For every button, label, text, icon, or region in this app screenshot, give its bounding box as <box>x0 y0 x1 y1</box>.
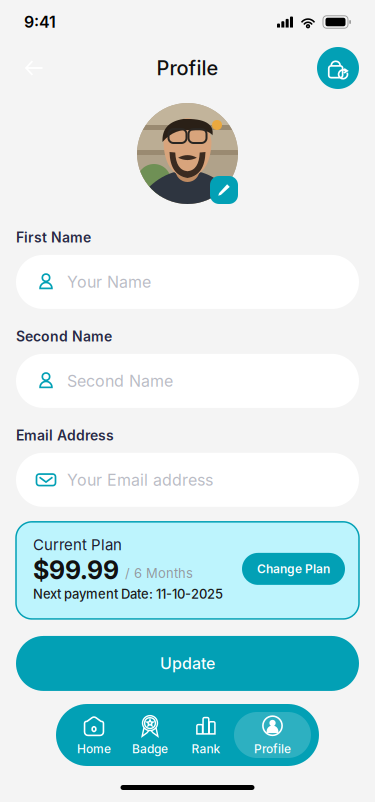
staticText: Rank <box>191 742 220 756</box>
button[interactable]: Profile <box>234 712 311 758</box>
staticText: Change Plan <box>257 562 330 576</box>
staticText: Profile <box>156 56 218 80</box>
staticText: Second Name <box>67 371 173 391</box>
button[interactable]: Edit photo <box>210 176 238 204</box>
staticText: 9:41 <box>24 12 56 32</box>
staticText: First Name <box>16 229 91 246</box>
button[interactable]: Change password <box>317 47 359 89</box>
staticText: Email Address <box>16 427 114 444</box>
button[interactable]: Update <box>16 636 359 691</box>
staticText: Profile <box>254 742 291 756</box>
button[interactable]: Rank <box>178 712 234 758</box>
staticText: Update <box>160 654 215 673</box>
staticText: Second Name <box>16 328 112 345</box>
staticText: Your Name <box>67 272 151 292</box>
staticText: Your Email address <box>67 470 213 489</box>
staticText: Badge <box>132 742 168 756</box>
staticText: / 6 Months <box>125 565 193 581</box>
button[interactable]: Change Plan <box>242 553 345 585</box>
button[interactable]: Home <box>66 712 122 758</box>
staticText: Next payment Date: 11-10-2025 <box>33 586 223 602</box>
button[interactable]: Your Name <box>16 255 359 309</box>
button[interactable]: Your Email address <box>16 453 359 507</box>
button[interactable]: Second Name <box>16 354 359 408</box>
staticText: $99.99 <box>33 555 119 585</box>
staticText: Home <box>77 742 111 756</box>
staticText: Current Plan <box>33 536 122 554</box>
button[interactable]: Badge <box>122 712 178 758</box>
